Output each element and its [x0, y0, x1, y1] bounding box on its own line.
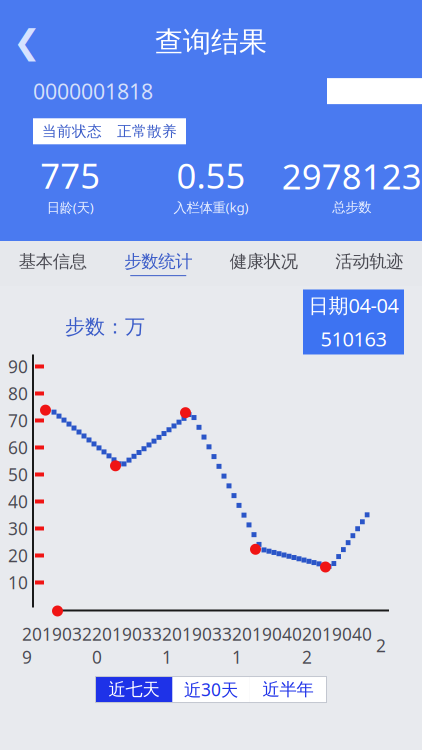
button[interactable]: 健康状况 [211, 243, 316, 284]
staticText: 60 [8, 436, 28, 459]
staticText: 20190331 [162, 622, 232, 668]
staticText: 步数：万 [65, 314, 145, 339]
button[interactable]: 农场直播 [327, 78, 422, 104]
staticText: 20 [8, 544, 28, 567]
staticText: 近七天 [108, 679, 159, 700]
staticText: 20190401 [232, 622, 302, 668]
staticText: ❮ [13, 23, 41, 61]
staticText: 日龄(天) [47, 198, 94, 216]
staticText: 近30天 [184, 678, 238, 701]
staticText: 20190329 [22, 622, 92, 668]
button[interactable]: Back [0, 21, 54, 63]
staticText: 2978123 [282, 153, 422, 199]
staticText: 2 [376, 634, 386, 657]
staticText: 当前状态 正常散养 [42, 122, 177, 140]
staticText: 日期04-04 [308, 292, 398, 318]
staticText: 0000001818 [33, 77, 153, 105]
staticText: 510163 [320, 325, 386, 352]
staticText: 查询结果 [155, 25, 267, 59]
staticText: 10 [8, 571, 28, 594]
staticText: 健康状况 [230, 251, 298, 272]
button[interactable]: 步数统计 [105, 243, 211, 284]
staticText: 30 [8, 517, 28, 540]
staticText: 40 [8, 490, 28, 513]
button[interactable]: 近七天 [95, 676, 172, 702]
staticText: 20190330 [92, 622, 162, 668]
staticText: 0.55 [176, 152, 245, 198]
staticText: 入栏体重(kg) [173, 198, 248, 216]
staticText: 总步数 [332, 199, 371, 215]
staticText: 基本信息 [19, 251, 87, 272]
staticText: 70 [8, 409, 28, 432]
staticText: 步数统计 [124, 251, 192, 272]
button[interactable]: 活动轨迹 [316, 243, 422, 284]
staticText: 80 [8, 382, 28, 405]
staticText: 20190402 [302, 622, 372, 668]
staticText: 775 [40, 152, 100, 198]
staticText: 近半年 [262, 679, 313, 700]
staticText: 50 [8, 463, 28, 486]
button[interactable]: 近30天 [172, 676, 249, 702]
button[interactable]: 近半年 [249, 676, 326, 702]
staticText: 90 [8, 355, 28, 378]
button[interactable]: 基本信息 [0, 243, 105, 284]
staticText: 活动轨迹 [335, 251, 403, 272]
